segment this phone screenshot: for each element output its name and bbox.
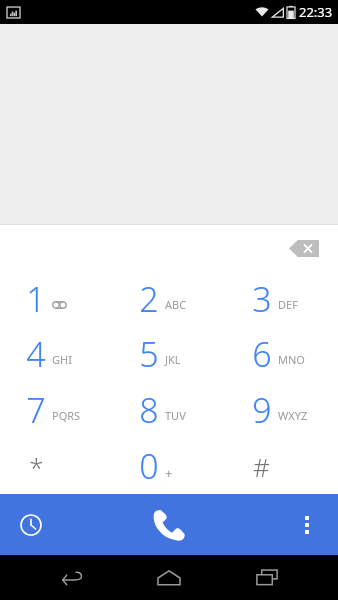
staticText: JKL	[165, 352, 181, 367]
staticText: 6	[252, 331, 272, 377]
staticText: PQRS	[52, 408, 81, 423]
button[interactable]: Recent apps	[241, 555, 293, 600]
button[interactable]: Delete	[284, 233, 324, 263]
staticText: 3	[252, 276, 272, 322]
button[interactable]: Call history	[8, 502, 54, 548]
staticText: ABC	[165, 297, 187, 312]
staticText: 1	[26, 276, 46, 322]
staticText: GHI	[52, 352, 72, 367]
staticText: 7	[26, 387, 46, 433]
staticText: 8	[139, 387, 159, 433]
button[interactable]: *	[0, 438, 112, 494]
staticText: DEF	[278, 297, 298, 312]
button[interactable]: 6	[225, 326, 338, 382]
button[interactable]: Call	[139, 495, 199, 555]
staticText: +	[165, 464, 173, 482]
button[interactable]: More options	[284, 502, 330, 548]
staticText: 4	[26, 331, 46, 377]
staticText: MNO	[278, 352, 305, 367]
button[interactable]: 0	[112, 438, 225, 494]
staticText: WXYZ	[278, 408, 308, 423]
button[interactable]: 1	[0, 271, 112, 326]
staticText: #	[253, 449, 270, 484]
staticText: 2	[139, 276, 159, 322]
button[interactable]: #	[225, 438, 338, 494]
staticText: 22:33	[299, 3, 333, 21]
button[interactable]: 7	[0, 382, 112, 438]
button[interactable]: 3	[225, 271, 338, 326]
staticText: 0	[139, 443, 159, 489]
staticText: 5	[139, 331, 159, 377]
staticText: *	[29, 449, 44, 484]
staticText: TUV	[165, 408, 186, 423]
button[interactable]: 8	[112, 382, 225, 438]
button[interactable]: Back	[46, 555, 98, 600]
staticText: 9	[252, 387, 272, 433]
button[interactable]: Home	[143, 555, 195, 600]
button[interactable]: 9	[225, 382, 338, 438]
button[interactable]: 4	[0, 326, 112, 382]
button[interactable]: 2	[112, 271, 225, 326]
button[interactable]: 5	[112, 326, 225, 382]
